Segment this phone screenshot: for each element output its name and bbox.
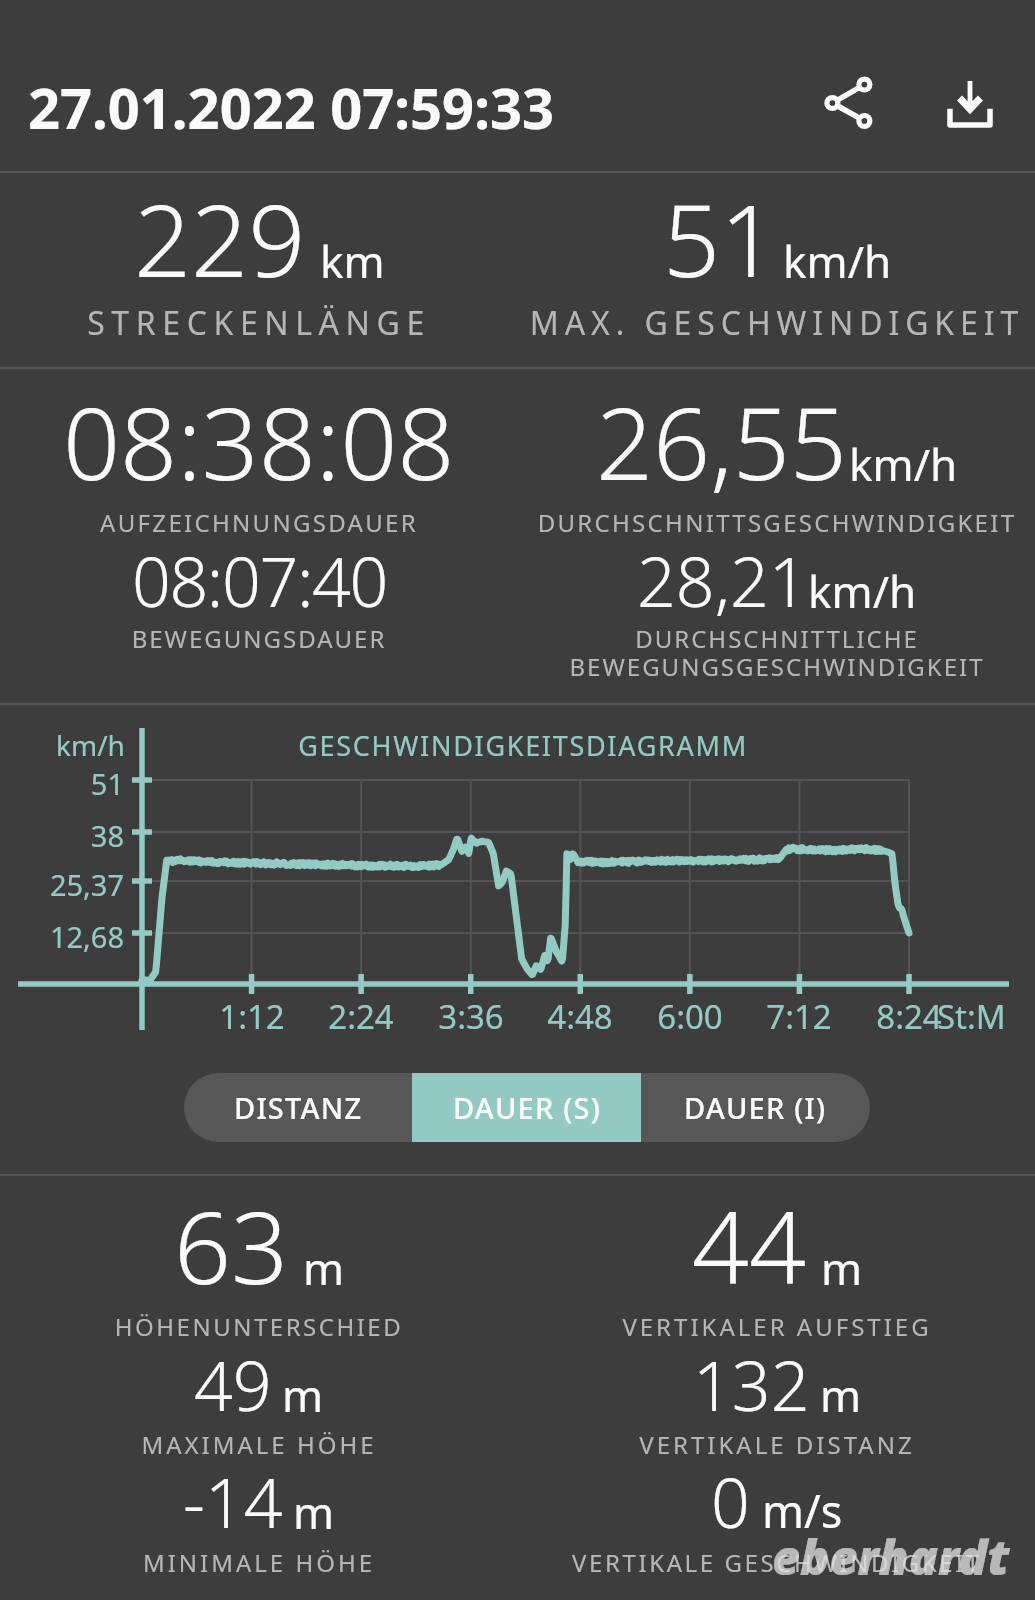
staticText: 08:07:40 xyxy=(132,534,387,627)
staticText: 51 xyxy=(663,170,778,306)
button[interactable]: Share xyxy=(796,51,900,155)
staticText: MINIMALE HÖHE xyxy=(0,1546,659,1579)
staticText: 44 xyxy=(692,1177,807,1313)
staticText: 08:38:08 xyxy=(63,373,455,509)
staticText: km/h xyxy=(783,231,892,291)
staticText: 25,37 xyxy=(0,865,124,904)
staticText: km/h xyxy=(56,726,125,764)
staticText: STRECKENLÄNGE xyxy=(0,301,659,345)
staticText: m xyxy=(821,1238,863,1298)
staticText: 7:12 xyxy=(649,994,949,1039)
staticText: VERTIKALE GESCHWINDIGKEIT xyxy=(377,1546,1035,1579)
staticText: 2:24 xyxy=(211,994,511,1039)
staticText: DISTANZ xyxy=(234,1088,363,1127)
staticText: 26,55 xyxy=(596,373,847,509)
staticText: MAX. GESCHWINDIGKEIT xyxy=(377,301,1035,345)
staticText: DAUER (I) xyxy=(684,1088,827,1127)
staticText: -14 xyxy=(183,1455,283,1548)
button[interactable]: DISTANZ xyxy=(184,1073,412,1142)
staticText: 28,21 xyxy=(637,534,808,627)
staticText: 6:00 xyxy=(540,994,840,1039)
staticText: 229 xyxy=(134,170,306,306)
staticText: m xyxy=(303,1238,345,1298)
staticText: 63 xyxy=(174,1177,289,1313)
staticText: km xyxy=(320,231,385,291)
staticText: 12,68 xyxy=(0,917,124,956)
staticText: 3:36 xyxy=(321,994,621,1039)
staticText: DURCHSCHNITTLICHE BEWEGUNGSGESCHWINDIGKE… xyxy=(377,622,1035,683)
staticText: 27.01.2022 07:59:33 xyxy=(28,69,554,145)
staticText: 38 xyxy=(0,816,124,855)
button[interactable]: Download xyxy=(918,51,1022,155)
staticText: DAUER (S) xyxy=(453,1088,601,1127)
staticText: VERTIKALE DISTANZ xyxy=(377,1428,1035,1461)
staticText: 1:12 xyxy=(102,994,402,1039)
staticText: m xyxy=(282,1365,324,1425)
staticText: AUFZEICHNUNGSDAUER xyxy=(0,506,659,539)
button[interactable]: DAUER (S) xyxy=(412,1073,641,1142)
staticText: m xyxy=(293,1482,335,1542)
staticText: 8:24 xyxy=(759,994,1035,1039)
staticText: km/h xyxy=(849,434,958,494)
staticText: GESCHWINDIGKEITSDIAGRAMM xyxy=(223,727,823,764)
staticText: VERTIKALER AUFSTIEG xyxy=(377,1310,1035,1343)
staticText: eberhardt xyxy=(772,1525,1010,1589)
staticText: 49 xyxy=(194,1338,272,1431)
staticText: HÖHENUNTERSCHIED xyxy=(0,1310,659,1343)
staticText: m/s xyxy=(762,1480,843,1541)
staticText: MAXIMALE HÖHE xyxy=(0,1428,659,1461)
staticText: St:M xyxy=(937,994,1006,1039)
staticText: m xyxy=(820,1365,862,1425)
button[interactable]: DAUER (I) xyxy=(641,1073,870,1142)
staticText: 0 xyxy=(711,1455,750,1548)
staticText: DURCHSCHNITTSGESCHWINDIGKEIT xyxy=(377,506,1035,539)
staticText: 132 xyxy=(693,1338,810,1431)
staticText: 51 xyxy=(0,764,124,803)
staticText: BEWEGUNGSDAUER xyxy=(0,622,659,655)
staticText: 4:48 xyxy=(430,994,730,1039)
staticText: km/h xyxy=(808,561,917,621)
